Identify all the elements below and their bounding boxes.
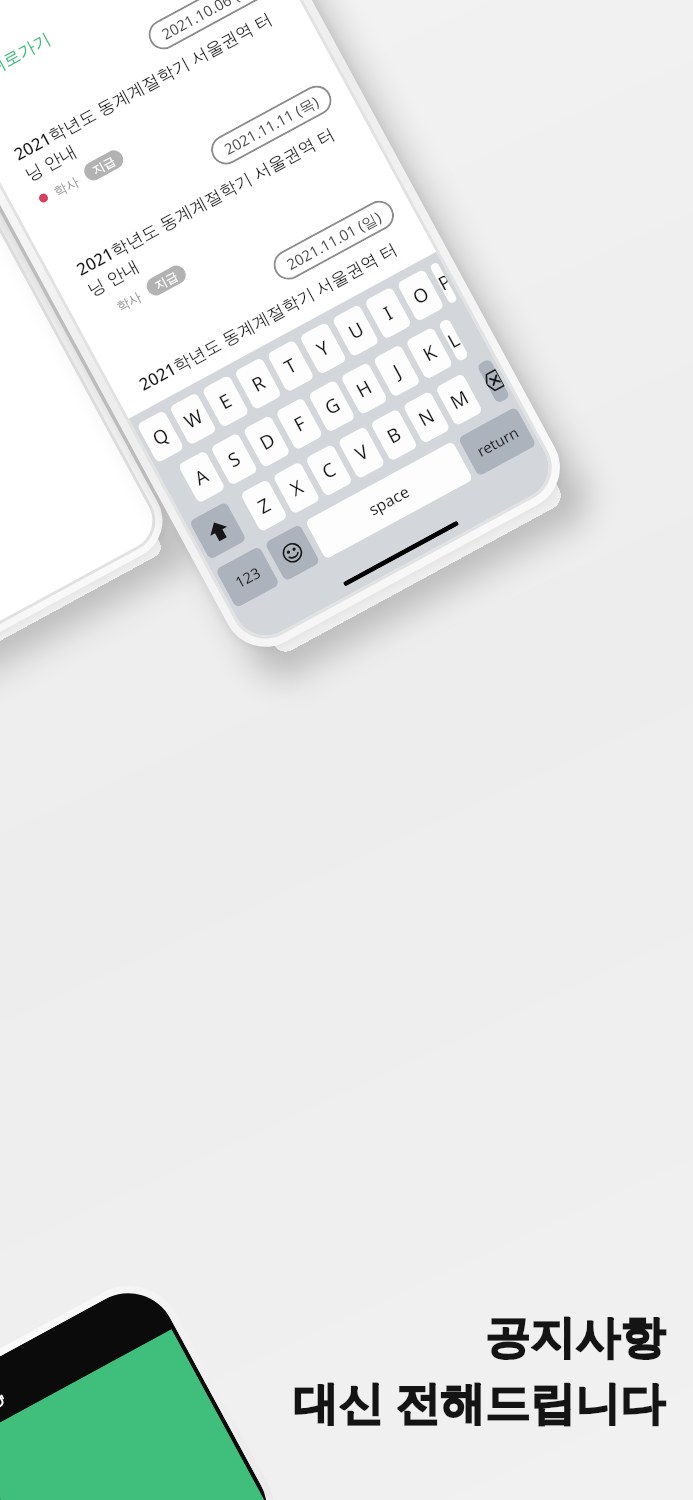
button[interactable]: B <box>370 408 418 462</box>
staticText: S <box>223 445 245 473</box>
staticText: P <box>433 269 454 296</box>
staticText: T <box>280 352 302 380</box>
staticText: X <box>285 473 308 502</box>
button[interactable]: Backspace <box>476 358 510 404</box>
staticText: 2021.11.11 (목) <box>220 91 322 159</box>
staticText: U <box>344 316 368 345</box>
button[interactable]: Shift <box>189 501 247 560</box>
button[interactable]: P <box>429 261 458 304</box>
staticText: H <box>351 374 377 404</box>
staticText: 123 <box>231 562 264 592</box>
button[interactable]: O <box>396 269 445 322</box>
staticText: V <box>350 438 373 467</box>
staticText: 2021.10.06 (수) <box>158 0 260 44</box>
staticText: K <box>418 339 441 367</box>
staticText: O <box>408 280 433 310</box>
staticText: 지급 <box>152 268 180 293</box>
button[interactable]: C <box>305 444 353 497</box>
button[interactable]: W <box>169 392 217 446</box>
staticText: 2021.11.01 (일) <box>283 206 385 274</box>
button[interactable]: H <box>340 362 388 415</box>
button[interactable]: I <box>364 286 412 340</box>
button[interactable]: M <box>435 373 483 426</box>
button[interactable]: R <box>234 357 282 410</box>
button[interactable]: F <box>275 397 323 451</box>
staticText: 2021학년도 동계계절학기 서울권역 터닝 안내 <box>10 0 301 186</box>
button[interactable]: Emoji <box>264 524 320 582</box>
staticText: 공지사항 <box>485 1310 665 1367</box>
staticText: G <box>320 391 345 421</box>
staticText: N <box>414 402 439 432</box>
button[interactable]: 2021.10.06 (수) <box>0 0 334 230</box>
button[interactable]: return <box>458 406 537 477</box>
button[interactable]: S <box>210 432 258 486</box>
button[interactable]: K <box>405 326 453 380</box>
button[interactable]: A <box>178 450 226 504</box>
staticText: I <box>379 300 397 326</box>
button[interactable]: 뒤로가기 <box>0 19 69 106</box>
staticText: Z <box>253 492 275 520</box>
staticText: J <box>388 358 406 383</box>
staticText: 2021학년도 동계계절학기 서울권역 터닝 안내 <box>135 229 416 397</box>
button[interactable]: D <box>243 415 291 468</box>
staticText: 지급 <box>90 153 118 178</box>
staticText: Y <box>312 334 334 362</box>
button[interactable]: T <box>266 339 315 393</box>
button[interactable]: N <box>402 391 451 444</box>
staticText: E <box>214 387 237 415</box>
staticText: Q <box>148 422 173 452</box>
staticText: 대신 전해드립니다 <box>293 1371 665 1432</box>
button[interactable]: E <box>201 375 250 428</box>
button[interactable]: J <box>373 344 421 398</box>
button[interactable]: 2021.11.11 (목) <box>26 63 396 345</box>
staticText: L <box>443 326 464 354</box>
staticText: B <box>382 420 406 450</box>
staticText: return <box>473 422 522 461</box>
button[interactable]: X <box>272 461 321 515</box>
staticText: F <box>289 410 310 437</box>
staticText: D <box>255 426 279 456</box>
staticText: C <box>317 456 341 485</box>
button[interactable]: Q <box>136 410 185 463</box>
staticText: 2021학년도 동계계절학기 서울권역 터닝 안내 <box>72 114 363 301</box>
button[interactable]: 2021.11.01 (일) <box>88 178 436 419</box>
staticText: 학사 <box>51 173 81 200</box>
staticText: space <box>364 480 414 520</box>
button[interactable]: G <box>308 379 356 433</box>
button[interactable]: U <box>331 304 380 357</box>
button[interactable]: V <box>337 426 386 479</box>
button[interactable]: Z <box>240 479 288 532</box>
staticText: R <box>247 369 270 398</box>
button[interactable]: Y <box>299 322 347 375</box>
button[interactable]: L <box>438 318 469 362</box>
button[interactable]: 123 <box>215 546 280 608</box>
staticText: W <box>179 403 208 434</box>
staticText: 뒤로가기 <box>0 29 54 80</box>
staticText: M <box>445 384 474 415</box>
staticText: 학사 <box>113 288 144 315</box>
staticText: A <box>190 462 214 491</box>
button[interactable]: space <box>305 441 473 560</box>
